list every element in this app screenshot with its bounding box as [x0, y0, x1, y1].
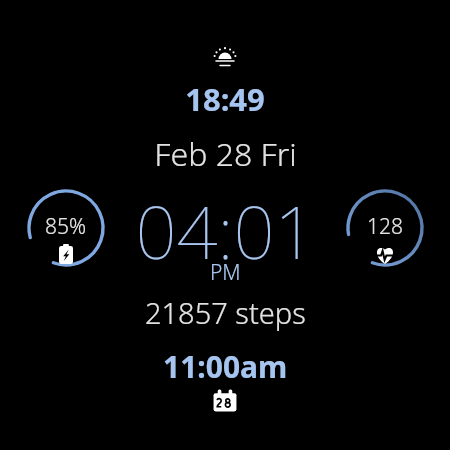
staticText: Feb 28 Fri	[154, 132, 297, 176]
staticText: 18:49	[185, 78, 265, 120]
button[interactable]: PM	[210, 258, 241, 287]
button[interactable]: Heart rate 128	[343, 186, 427, 270]
staticText: PM	[210, 258, 241, 287]
button[interactable]: Calendar, day 28	[212, 388, 238, 414]
button[interactable]: 18:49	[185, 78, 265, 120]
button[interactable]: 04:01	[135, 182, 316, 280]
button[interactable]: 11:00am	[163, 346, 288, 387]
button[interactable]: 21857 steps	[145, 293, 306, 332]
button[interactable]: Feb 28 Fri	[154, 132, 297, 176]
button[interactable]: Battery 85 percent	[24, 186, 108, 270]
staticText: 128	[367, 212, 403, 241]
staticText: 85%	[45, 212, 87, 241]
button[interactable]: Sunrise	[210, 41, 240, 71]
staticText: 04:01	[135, 182, 316, 280]
staticText: 21857 steps	[145, 293, 306, 332]
staticText: 11:00am	[163, 346, 288, 387]
